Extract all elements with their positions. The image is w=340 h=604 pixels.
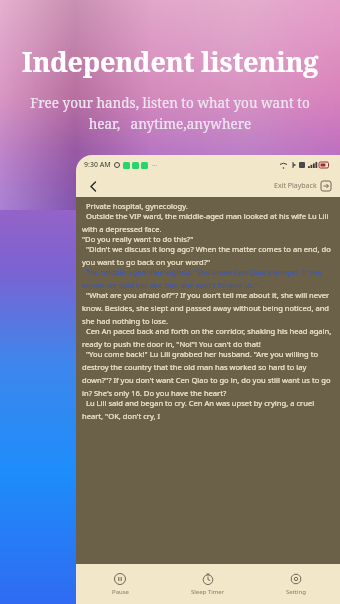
staticText: Cen An paced back and forth on the corri… xyxy=(82,326,335,349)
staticText: Private hospital, gynecology. xyxy=(82,201,188,211)
staticText: Pause xyxy=(112,588,129,596)
button[interactable]: Back xyxy=(85,178,101,194)
staticText: Setting xyxy=(286,588,306,596)
staticText: The middle-aged man sighed. "You know Ce… xyxy=(82,267,335,290)
staticText: "Didn't we discuss it long ago? When the… xyxy=(82,244,335,267)
staticText: "You come back!" Lu Lili grabbed her hus… xyxy=(82,349,335,398)
button[interactable]: Sleep Timer xyxy=(164,564,252,604)
staticText: "What are you afraid of?"? If you don't … xyxy=(82,290,335,326)
staticText: Independent listening xyxy=(0,43,340,80)
staticText: Free your hands, listen to what you want… xyxy=(16,94,324,133)
button[interactable]: Setting xyxy=(252,564,340,604)
button[interactable]: Pause xyxy=(76,564,164,604)
staticText: 9:30 AM xyxy=(84,160,111,170)
staticText: ··· xyxy=(152,161,157,169)
staticText: Sleep Timer xyxy=(191,588,225,596)
staticText: Lu Lili said and began to cry. Cen An wa… xyxy=(82,398,335,421)
staticText: Exit Playback xyxy=(274,181,317,191)
button[interactable]: Exit Playback xyxy=(274,181,331,191)
staticText: "Do you really want to do this?" xyxy=(82,234,194,244)
staticText: Outside the VIP ward, the middle-aged ma… xyxy=(82,211,335,234)
